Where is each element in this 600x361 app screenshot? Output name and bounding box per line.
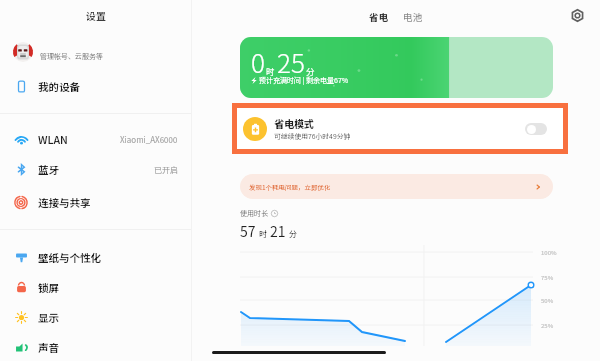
staticText: 分 (289, 228, 297, 240)
staticText: 设置 (86, 8, 106, 22)
button[interactable]: WLAN (0, 124, 191, 155)
staticText: 已开启 (154, 164, 178, 176)
staticText: 我的设备 (38, 79, 80, 94)
button[interactable]: 省电 (364, 7, 394, 27)
staticText: 75% (541, 273, 554, 282)
staticText: 50% (541, 296, 554, 305)
staticText: 分 (306, 65, 315, 77)
button[interactable]: 锁屏 (0, 272, 191, 303)
staticText: 连接与共享 (38, 195, 91, 210)
staticText: 锁屏 (38, 280, 59, 295)
staticText: 25 (277, 43, 305, 81)
button[interactable]: 发现1个耗电问题，立即优化 (240, 174, 553, 199)
staticText: 使用时长 (240, 208, 268, 218)
button[interactable]: 管理帐号、云服务等 (0, 36, 191, 68)
staticText: Xiaomi_AX6000 (120, 134, 178, 146)
staticText: 蓝牙 (38, 162, 59, 177)
staticText: 声音 (38, 340, 59, 355)
staticText: 省电模式 (274, 116, 314, 130)
staticText: WLAN (38, 132, 68, 147)
button[interactable]: 蓝牙 (0, 154, 191, 185)
button[interactable]: 连接与共享 (0, 187, 191, 218)
staticText: 预计充满时间 | 剩余电量67% (259, 75, 349, 85)
staticText: 100% (541, 248, 557, 257)
button[interactable]: 我的设备 (0, 71, 191, 102)
staticText: 21 (270, 221, 286, 241)
staticText: 57 (240, 221, 256, 241)
staticText: 可继续使用76小时49分钟 (274, 131, 351, 141)
staticText: 电池 (403, 10, 423, 24)
staticText: 壁纸与个性化 (38, 250, 101, 265)
staticText: 25% (541, 321, 554, 330)
staticText: 0 (251, 43, 265, 81)
staticText: 发现1个耗电问题，立即优化 (249, 182, 331, 191)
staticText: 显示 (38, 310, 59, 325)
staticText: 省电 (369, 10, 389, 24)
button[interactable]: Settings (566, 4, 588, 26)
button[interactable]: 省电模式 (237, 108, 563, 149)
staticText: 管理帐号、云服务等 (40, 51, 103, 61)
button[interactable]: 显示 (0, 302, 191, 333)
button[interactable]: 电池 (398, 7, 428, 27)
staticText: 时 (259, 228, 267, 240)
button[interactable]: 声音 (0, 332, 191, 361)
staticText: 时 (266, 65, 275, 77)
button[interactable]: 壁纸与个性化 (0, 242, 191, 273)
